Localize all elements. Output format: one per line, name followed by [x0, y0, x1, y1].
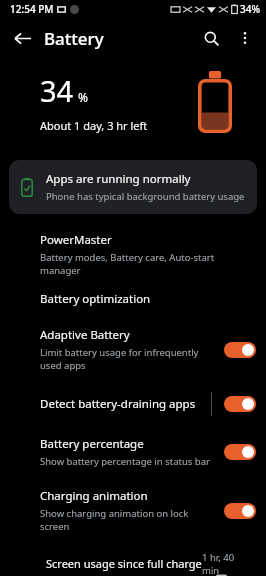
button[interactable]: Detect battery-draining apps toggle: [224, 396, 256, 412]
staticText: Screen usage since full charge: [46, 556, 202, 571]
button[interactable]: Battery percentage toggle: [224, 444, 256, 460]
button[interactable]: Charging animation toggle: [224, 503, 256, 519]
staticText: Show battery percentage in status bar: [40, 455, 210, 468]
button[interactable]: More options: [228, 21, 262, 55]
button[interactable]: PowerMaster: [0, 232, 266, 277]
button[interactable]: Screen usage since full charge: [0, 551, 266, 576]
button[interactable]: Back: [4, 20, 40, 56]
staticText: Limit battery usage for infrequently use…: [40, 346, 216, 372]
staticText: Adaptive Battery: [40, 327, 130, 343]
button[interactable]: Battery percentage: [0, 430, 266, 474]
button[interactable]: Search: [194, 21, 228, 55]
staticText: Charging animation: [40, 488, 148, 504]
staticText: 1 hr, 40 min: [202, 551, 252, 576]
button[interactable]: Battery optimization: [0, 291, 266, 307]
button[interactable]: Charging animation: [0, 482, 266, 539]
staticText: Phone has typical background battery usa…: [46, 190, 245, 203]
button[interactable]: Adaptive Battery: [0, 321, 266, 378]
staticText: Show charging animation on lock screen: [40, 507, 216, 533]
staticText: Battery: [44, 27, 104, 50]
staticText: Battery optimization: [40, 291, 151, 307]
staticText: %: [78, 89, 88, 105]
button[interactable]: Adaptive Battery toggle: [224, 342, 256, 358]
staticText: Battery modes, Battery care, Auto-start …: [40, 251, 250, 277]
staticText: 12:54 PM: [10, 2, 54, 16]
button[interactable]: Apps are running normally: [9, 160, 257, 214]
staticText: 34: [40, 71, 74, 110]
staticText: Detect battery-draining apps: [40, 396, 196, 412]
staticText: 34%: [240, 2, 260, 16]
staticText: About 1 day, 3 hr left: [40, 118, 148, 133]
staticText: Battery percentage: [40, 436, 144, 452]
button[interactable]: Detect battery-draining apps: [0, 386, 266, 422]
staticText: Apps are running normally: [46, 171, 191, 187]
staticText: PowerMaster: [40, 232, 112, 248]
